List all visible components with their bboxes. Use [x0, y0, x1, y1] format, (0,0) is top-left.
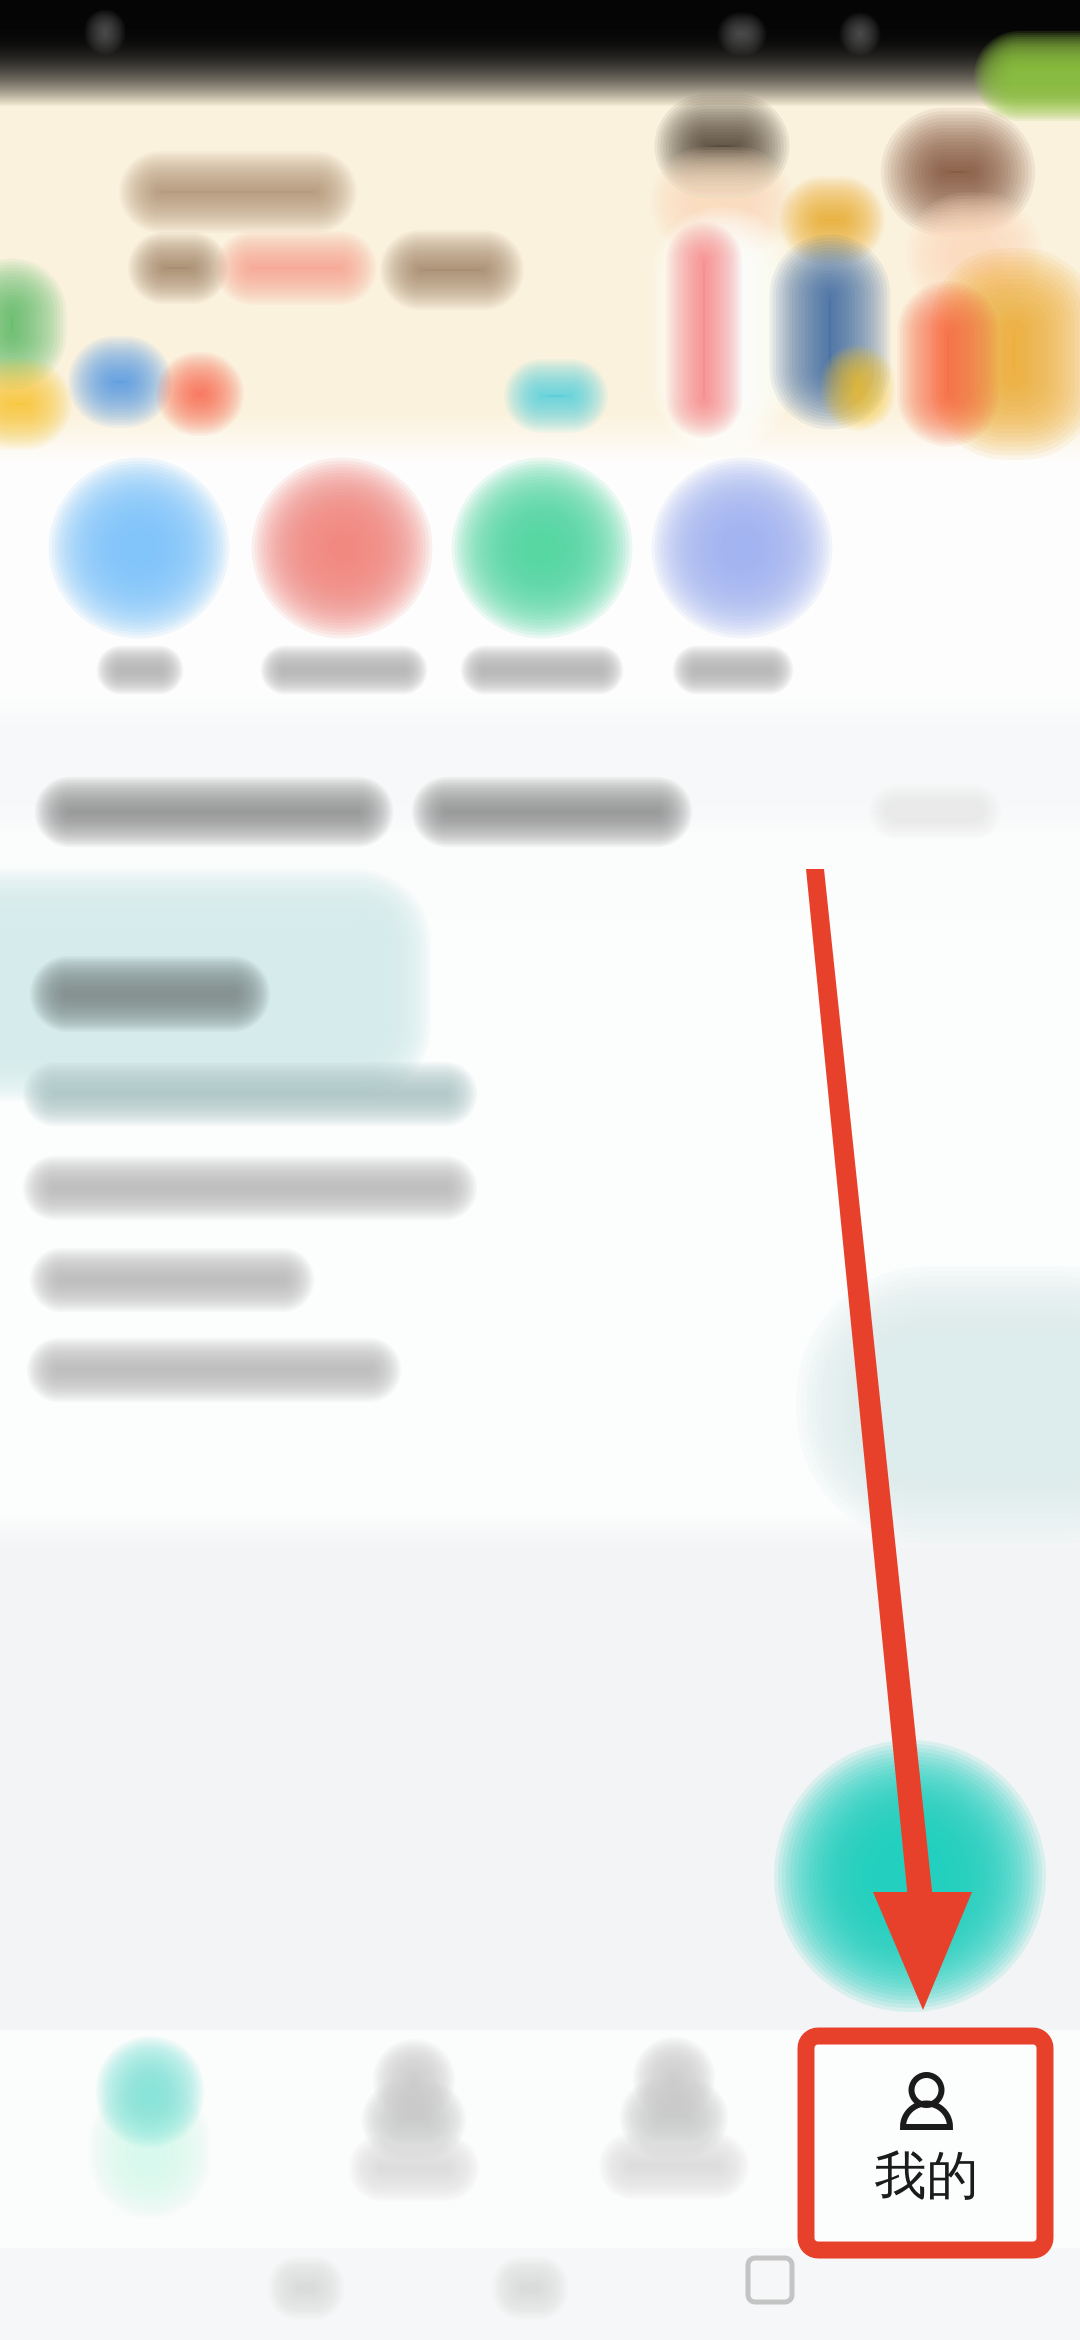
button[interactable]: 我的	[0, 0, 1080, 2340]
button[interactable]: 消息	[0, 0, 1080, 2340]
staticText: 我的	[874, 2144, 978, 2208]
button[interactable]: 发现	[0, 0, 1080, 2340]
button[interactable]: 首页	[0, 0, 1080, 2340]
